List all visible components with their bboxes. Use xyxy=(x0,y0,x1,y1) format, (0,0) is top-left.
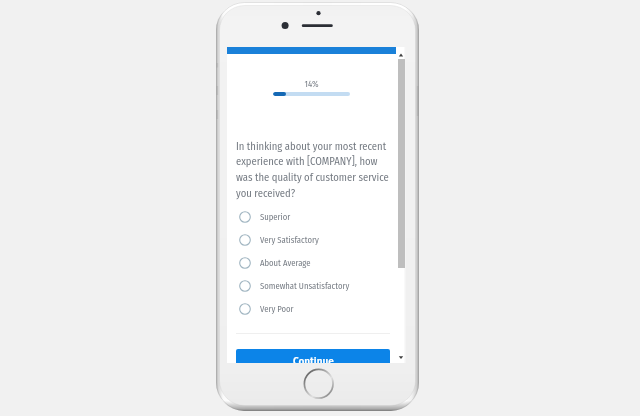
staticText: Superior xyxy=(260,212,291,222)
staticText: In thinking about your most recent exper… xyxy=(236,140,389,200)
staticText: Somewhat Unsatisfactory xyxy=(260,281,350,291)
staticText: Continue xyxy=(293,355,334,363)
button[interactable]: Very Satisfactory xyxy=(236,228,390,251)
staticText: 14% xyxy=(227,79,396,90)
button[interactable]: About Average xyxy=(236,251,390,274)
button[interactable]: Continue xyxy=(236,349,390,363)
button[interactable]: Somewhat Unsatisfactory xyxy=(236,274,390,297)
staticText: Very Poor xyxy=(260,304,294,314)
other: Scroll xyxy=(396,47,406,363)
staticText: Very Satisfactory xyxy=(260,235,319,245)
staticText: About Average xyxy=(260,258,311,268)
button[interactable]: Superior xyxy=(236,205,390,228)
button[interactable]: Very Poor xyxy=(236,297,390,320)
